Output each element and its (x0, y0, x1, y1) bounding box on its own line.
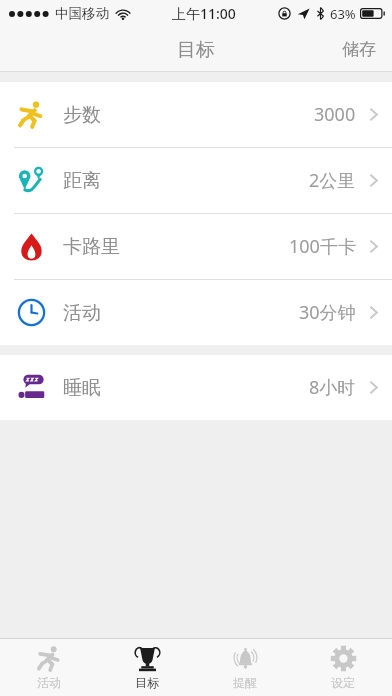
staticText: 提醒 (233, 675, 257, 690)
button[interactable]: 活动 (0, 280, 392, 345)
button[interactable]: 活动 (0, 639, 98, 696)
staticText: 设定 (331, 675, 355, 690)
button[interactable]: 距离 (0, 148, 392, 213)
staticText: 距离 (63, 169, 101, 193)
staticText: 活动 (63, 301, 101, 325)
button[interactable]: 步数 (0, 82, 392, 147)
staticText: 睡眠 (63, 376, 101, 400)
staticText: 3000 (314, 102, 356, 127)
button[interactable]: 目标 (98, 639, 196, 696)
staticText: 100千卡 (289, 234, 356, 259)
staticText: 目标 (135, 675, 159, 690)
staticText: 63% (330, 5, 356, 23)
staticText: 活动 (37, 675, 61, 690)
staticText: 30分钟 (299, 300, 356, 325)
staticText: 目标 (177, 38, 215, 62)
staticText: 2公里 (309, 168, 356, 193)
button[interactable]: 卡路里 (0, 214, 392, 279)
button[interactable]: 设定 (294, 639, 392, 696)
staticText: 卡路里 (63, 235, 120, 259)
staticText: 8小时 (309, 375, 356, 400)
button[interactable]: 睡眠 (0, 355, 392, 420)
staticText: 步数 (63, 103, 101, 127)
staticText: 储存 (342, 39, 376, 60)
staticText: 中国移动 (55, 5, 109, 22)
staticText: 上午11:00 (172, 4, 236, 23)
button[interactable]: 提醒 (196, 639, 294, 696)
button[interactable]: 储存 (326, 28, 392, 71)
